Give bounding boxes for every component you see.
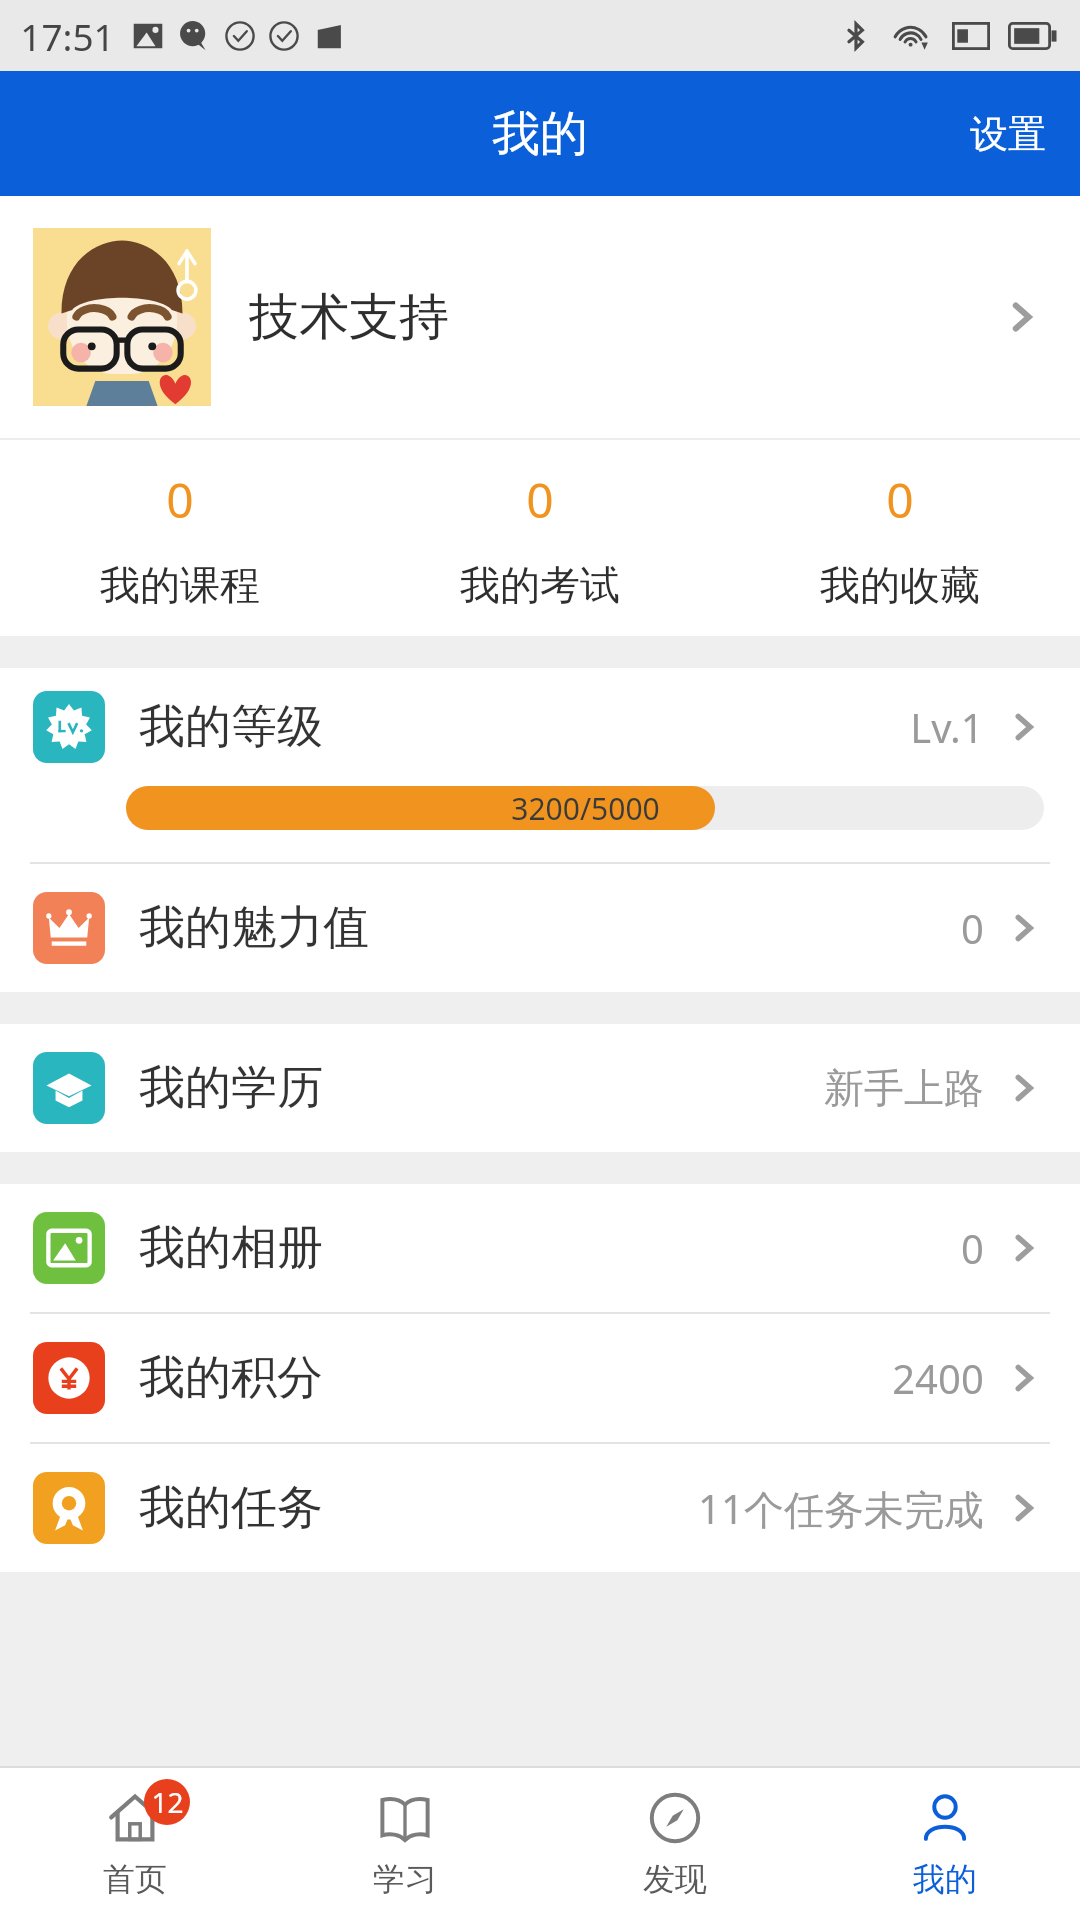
button[interactable]: 设置 [936, 71, 1080, 196]
staticText: 2400 [892, 1351, 984, 1405]
staticText: 新手上路 [824, 1063, 984, 1113]
button[interactable]: 技术支持 [0, 196, 1080, 438]
staticText: 我的魅力值 [139, 899, 369, 957]
staticText: 我的 [913, 1859, 977, 1899]
staticText: 设置 [970, 110, 1046, 158]
staticText: 我的收藏 [820, 560, 980, 610]
button[interactable]: 我的任务 [0, 1444, 1080, 1572]
staticText: 学习 [373, 1859, 437, 1899]
staticText: 0 [961, 901, 984, 955]
button[interactable]: 0 [720, 440, 1080, 636]
staticText: 12 [151, 1783, 184, 1821]
button[interactable]: Home [0, 1768, 270, 1920]
staticText: 我的任务 [139, 1479, 323, 1537]
staticText: 0 [961, 1221, 984, 1275]
staticText: 11个任务未完成 [698, 1481, 984, 1536]
staticText: 我的考试 [460, 560, 620, 610]
staticText: 我的相册 [139, 1219, 323, 1277]
staticText: 我的学历 [139, 1059, 323, 1117]
staticText: 17:51 [20, 11, 115, 61]
staticText: 0 [886, 467, 914, 532]
staticText: 首页 [103, 1859, 167, 1899]
button[interactable]: 0 [360, 440, 720, 636]
staticText: 0 [166, 467, 194, 532]
staticText: 3200/5000 [511, 788, 660, 829]
button[interactable]: 我的等级 [0, 668, 1080, 786]
staticText: 我的等级 [139, 698, 323, 756]
staticText: 我的积分 [139, 1349, 323, 1407]
button[interactable]: Discover [540, 1768, 810, 1920]
button[interactable]: 我的积分 [0, 1314, 1080, 1442]
staticText: 我的课程 [100, 560, 260, 610]
staticText: Lv.1 [910, 700, 984, 754]
button[interactable]: 我的魅力值 [0, 864, 1080, 992]
staticText: 我的 [492, 104, 588, 164]
button[interactable]: 我的相册 [0, 1184, 1080, 1312]
button[interactable]: Study [270, 1768, 540, 1920]
staticText: 技术支持 [249, 286, 449, 349]
button[interactable]: 0 [0, 440, 360, 636]
button[interactable]: Mine [810, 1768, 1080, 1920]
staticText: 发现 [643, 1859, 707, 1899]
staticText: 0 [526, 467, 554, 532]
button[interactable]: 我的学历 [0, 1024, 1080, 1152]
